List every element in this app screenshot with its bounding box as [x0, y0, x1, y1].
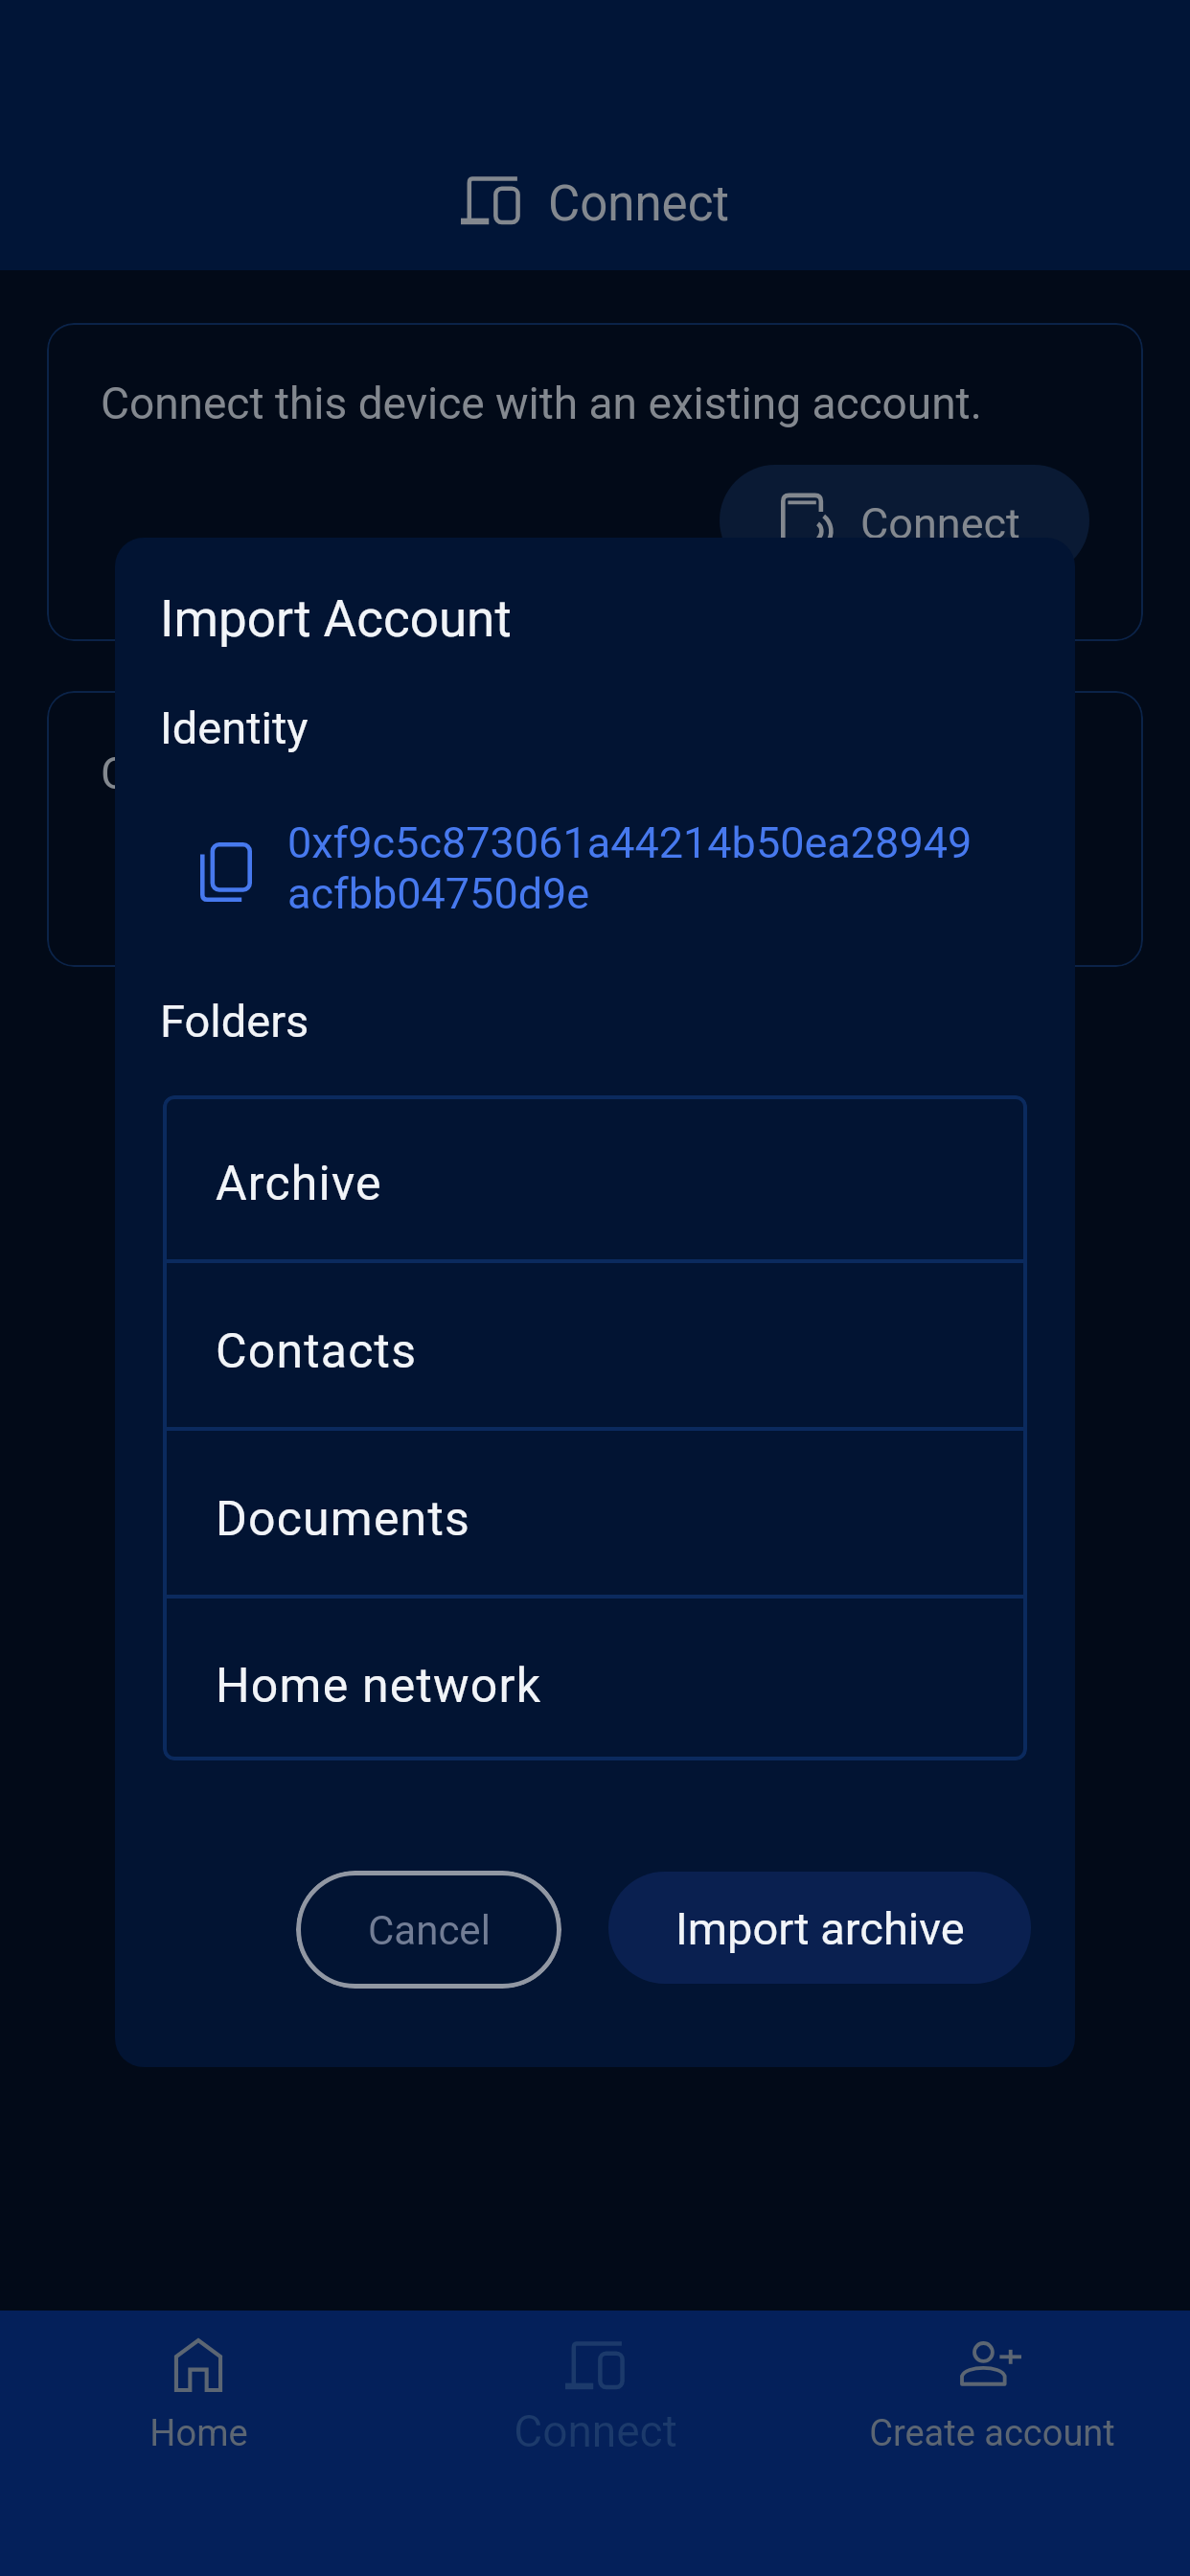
button[interactable]: Cancel — [296, 1871, 561, 1989]
staticText: Import archive — [675, 1902, 965, 1955]
button[interactable]: Contacts — [163, 1263, 1027, 1427]
button[interactable]: Create account — [746, 825, 1058, 936]
staticText: Home — [149, 2412, 248, 2455]
button[interactable]: Import archive — [608, 1872, 1031, 1984]
staticText: Connect — [548, 175, 730, 233]
other: Devices — [461, 176, 520, 224]
staticText: Identity — [160, 701, 309, 754]
staticText: Folders — [160, 995, 309, 1047]
button[interactable]: Archive — [163, 1095, 1027, 1259]
staticText: 0xf9c5c873061a44214b50ea28949acfbb04750d… — [287, 817, 987, 919]
other: Home — [169, 2338, 228, 2392]
other: Create account — [962, 2338, 1021, 2392]
other: Copy identity — [200, 842, 252, 902]
button[interactable]: Create account — [793, 2311, 1190, 2576]
staticText: Home network — [216, 1658, 542, 1714]
staticText: Contacts — [216, 1323, 418, 1380]
staticText: Connect — [514, 2405, 677, 2457]
button[interactable]: Copy identity — [115, 793, 1075, 917]
staticText: Connect — [860, 498, 1020, 549]
staticText: Create account — [869, 2412, 1115, 2455]
button[interactable]: Documents — [163, 1431, 1027, 1595]
button[interactable]: Devices — [397, 2311, 793, 2576]
button[interactable]: Home — [0, 2311, 397, 2576]
other: Devices — [565, 2338, 625, 2392]
button[interactable]: Connect — [720, 465, 1089, 576]
staticText: Connect this device with an existing acc… — [101, 378, 982, 429]
staticText: Create a new account on this device. — [101, 747, 818, 799]
staticText: Import Account — [160, 589, 512, 649]
staticText: Documents — [216, 1491, 471, 1548]
other: Connect — [781, 494, 833, 550]
button[interactable]: Home network — [163, 1598, 1027, 1760]
staticText: Cancel — [368, 1907, 491, 1954]
staticText: Archive — [216, 1156, 382, 1212]
